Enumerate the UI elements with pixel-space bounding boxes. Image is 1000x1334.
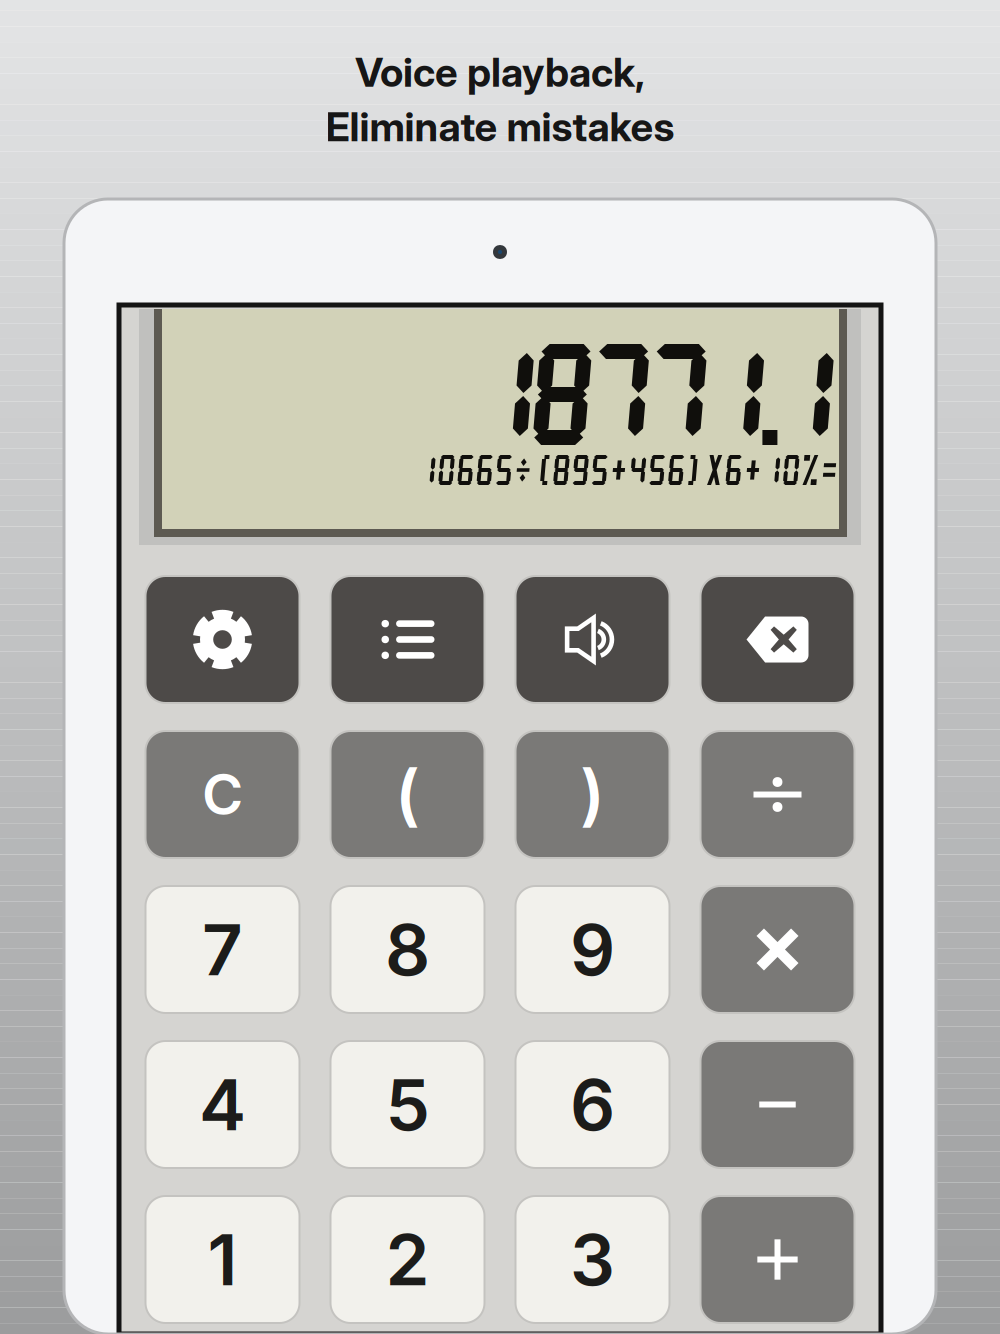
button[interactable]: Settings — [145, 576, 299, 703]
staticText: 5 — [385, 1062, 429, 1147]
staticText: ( — [395, 754, 420, 835]
staticText: 7 — [202, 907, 243, 992]
button[interactable]: Divide — [700, 731, 854, 858]
button[interactable]: ( — [330, 731, 484, 858]
staticText: 3 — [570, 1217, 615, 1302]
button[interactable]: Minus — [700, 1041, 854, 1168]
button[interactable]: Multiply — [700, 886, 854, 1013]
button[interactable]: 6 — [515, 1041, 669, 1168]
button[interactable]: 4 — [145, 1041, 299, 1168]
staticText: ) — [580, 754, 605, 835]
button[interactable]: 3 — [515, 1196, 669, 1323]
button[interactable]: 7 — [145, 886, 299, 1013]
button[interactable]: 2 — [330, 1196, 484, 1323]
button[interactable]: 9 — [515, 886, 669, 1013]
button[interactable]: 1 — [145, 1196, 299, 1323]
staticText: Voice playback, — [355, 48, 645, 96]
staticText: 9 — [570, 907, 615, 992]
button[interactable]: ) — [515, 731, 669, 858]
button[interactable]: History — [330, 576, 484, 703]
staticText: 8 — [385, 907, 430, 992]
button[interactable]: Voice playback — [515, 576, 669, 703]
staticText: 4 — [199, 1062, 246, 1147]
staticText: C — [202, 761, 243, 828]
staticText: 6 — [570, 1062, 615, 1147]
button[interactable]: C — [145, 731, 299, 858]
button[interactable]: Plus — [700, 1196, 854, 1323]
button[interactable]: Delete — [700, 576, 854, 703]
staticText: Eliminate mistakes — [325, 102, 674, 151]
staticText: 1 — [207, 1217, 237, 1302]
staticText: 2 — [385, 1217, 429, 1302]
button[interactable]: 5 — [330, 1041, 484, 1168]
button[interactable]: 8 — [330, 886, 484, 1013]
